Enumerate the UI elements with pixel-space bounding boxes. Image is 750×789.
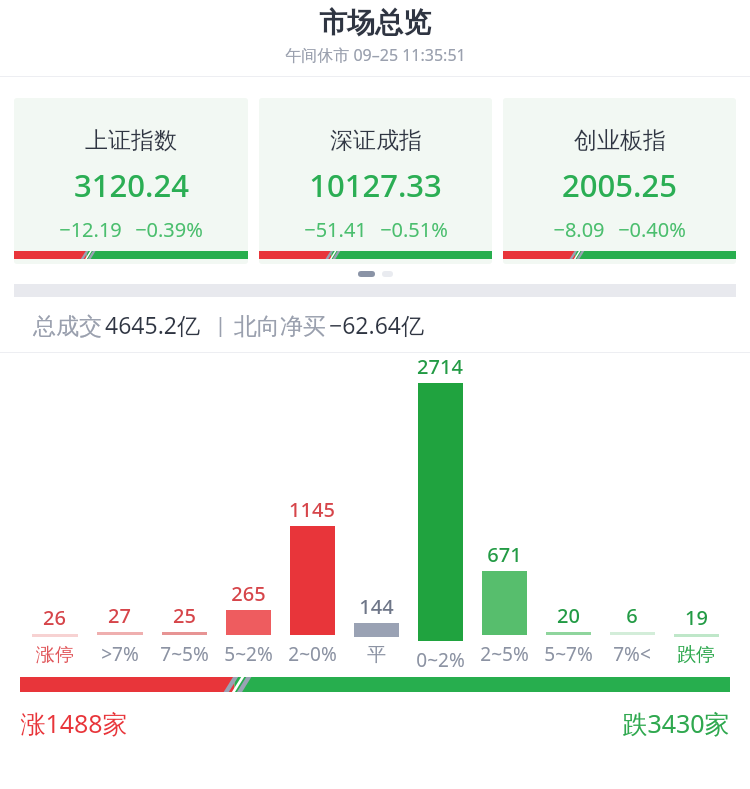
staticText: 7~5%	[160, 641, 209, 667]
staticText: |	[200, 312, 231, 338]
staticText: 市场总览	[319, 5, 431, 40]
staticText: 10127.33	[309, 164, 442, 206]
button[interactable]: 26	[22, 353, 87, 671]
staticText: −51.41	[304, 216, 367, 243]
staticText: −0.39%	[135, 216, 203, 243]
staticText: 5~2%	[224, 641, 273, 667]
staticText: 144	[359, 593, 394, 620]
button[interactable]: 1145	[280, 353, 344, 671]
staticText: −0.51%	[380, 216, 448, 243]
button[interactable]: 市场总览	[0, 0, 750, 76]
button[interactable]: 总成交	[0, 297, 750, 352]
staticText: 25	[173, 602, 196, 629]
staticText: 涨停	[36, 643, 74, 667]
staticText: 265	[231, 580, 266, 607]
button[interactable]: 27	[87, 353, 152, 671]
staticText: 2~5%	[480, 641, 529, 667]
staticText: 深证成指	[330, 126, 422, 155]
button[interactable]: 25	[152, 353, 216, 671]
button[interactable]: 144	[344, 353, 408, 671]
staticText: 涨1488家	[20, 706, 128, 740]
staticText: 671	[487, 541, 522, 568]
button[interactable]: 265	[216, 353, 280, 671]
staticText: 26	[43, 604, 66, 631]
button[interactable]: 671	[472, 353, 536, 671]
staticText: 6	[626, 602, 638, 629]
staticText: 4645.2亿	[105, 309, 200, 340]
staticText: −0.40%	[618, 216, 686, 243]
staticText: 总成交	[30, 309, 105, 340]
staticText: 5~7%	[544, 641, 593, 667]
staticText: −62.64亿	[329, 309, 424, 340]
staticText: 3120.24	[74, 164, 189, 206]
staticText: −12.19	[59, 216, 122, 243]
staticText: 跌停	[677, 643, 715, 667]
staticText: −8.09	[553, 216, 605, 243]
staticText: 7%<	[613, 641, 651, 667]
staticText: 27	[108, 602, 131, 629]
staticText: 20	[557, 602, 580, 629]
button[interactable]: 涨1488家	[20, 706, 730, 740]
staticText: >7%	[101, 641, 139, 667]
staticText: 跌3430家	[622, 706, 730, 740]
staticText: 北向净买	[231, 309, 329, 340]
button[interactable]: 6	[600, 353, 664, 671]
staticText: 19	[685, 604, 708, 631]
button[interactable]: 20	[536, 353, 600, 671]
staticText: 0~2%	[416, 647, 465, 671]
button[interactable]: 2714	[408, 353, 472, 671]
button[interactable]: 上证指数	[14, 98, 248, 264]
staticText: 2~0%	[288, 641, 337, 667]
staticText: 2714	[417, 353, 463, 380]
staticText: 创业板指	[574, 126, 666, 155]
button[interactable]: 深证成指	[259, 98, 492, 264]
staticText: 午间休市 09–25 11:35:51	[285, 44, 466, 66]
staticText: 平	[367, 643, 386, 667]
button[interactable]: 19	[664, 353, 728, 671]
staticText: 上证指数	[85, 126, 177, 155]
staticText: 1145	[289, 496, 335, 523]
button[interactable]: 创业板指	[503, 98, 736, 264]
staticText: 2005.25	[562, 164, 677, 206]
